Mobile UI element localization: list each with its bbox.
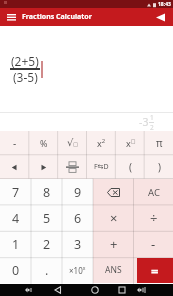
staticText: + (110, 235, 118, 253)
staticText: 5 (43, 210, 51, 227)
staticText: % (40, 137, 48, 149)
button[interactable] (7, 14, 16, 21)
staticText: = (151, 262, 159, 280)
button[interactable]: . (31, 257, 62, 283)
staticText: Fractions Calculator (22, 12, 92, 22)
staticText: π (156, 136, 163, 150)
button[interactable] (155, 13, 166, 22)
staticText: (2+5) (11, 53, 39, 69)
staticText: x□ (126, 137, 136, 149)
staticText: . (45, 262, 49, 279)
staticText: - (151, 235, 156, 253)
staticText: 1 (150, 113, 154, 122)
button[interactable]: 0 (0, 257, 31, 283)
staticText: 2 (43, 236, 51, 253)
button[interactable] (58, 155, 87, 179)
button[interactable] (29, 155, 58, 179)
button[interactable]: √□ (58, 131, 87, 155)
staticText: 4 (12, 210, 20, 227)
button[interactable]: ÷ (134, 205, 173, 231)
staticText: 1 (12, 236, 20, 253)
staticText: √□ (67, 137, 79, 149)
button[interactable]: 8 (31, 179, 62, 205)
button[interactable]: % (29, 131, 58, 155)
staticText: ) (158, 160, 161, 174)
staticText: x2 (97, 137, 106, 150)
staticText: 3 (74, 236, 82, 253)
button[interactable]: F⇆D (87, 155, 116, 179)
button[interactable]: ANS (93, 257, 134, 283)
staticText: (3-5) (13, 69, 38, 85)
staticText: F⇆D (94, 162, 109, 172)
staticText: -3 (139, 115, 149, 129)
button[interactable]: ) (145, 155, 173, 179)
button[interactable]: 7 (0, 179, 31, 205)
staticText: ×10x (69, 265, 86, 276)
staticText: ( (129, 160, 132, 174)
button[interactable]: - (134, 231, 173, 257)
staticText: 2 (150, 123, 154, 131)
staticText: 8 (43, 184, 51, 201)
button[interactable]: + (93, 231, 134, 257)
staticText: 0 (12, 262, 20, 279)
button[interactable]: 6 (62, 205, 93, 231)
button[interactable]: = (137, 258, 173, 283)
button[interactable]: × (93, 205, 134, 231)
staticText: AC (148, 186, 160, 199)
button[interactable] (0, 155, 29, 179)
button[interactable]: AC (134, 179, 173, 205)
button[interactable]: π (145, 131, 173, 155)
staticText: 7 (12, 184, 20, 201)
button[interactable]: x2 (87, 131, 116, 155)
staticText: ANS (105, 264, 122, 276)
staticText: 9 (74, 184, 82, 201)
staticText: ÷ (150, 209, 158, 227)
staticText: 18:43 (158, 1, 171, 8)
button[interactable]: - (0, 131, 29, 155)
button[interactable]: ( (116, 155, 145, 179)
button[interactable]: 3 (62, 231, 93, 257)
button[interactable]: 4 (0, 205, 31, 231)
button[interactable]: 2 (31, 231, 62, 257)
staticText: 6 (74, 210, 82, 227)
button[interactable]: x□ (116, 131, 145, 155)
button[interactable]: ×10x (62, 257, 93, 283)
staticText: × (110, 209, 118, 227)
staticText: - (13, 136, 17, 150)
button[interactable]: 5 (31, 205, 62, 231)
button[interactable]: 9 (62, 179, 93, 205)
button[interactable] (93, 179, 134, 205)
button[interactable]: 1 (0, 231, 31, 257)
